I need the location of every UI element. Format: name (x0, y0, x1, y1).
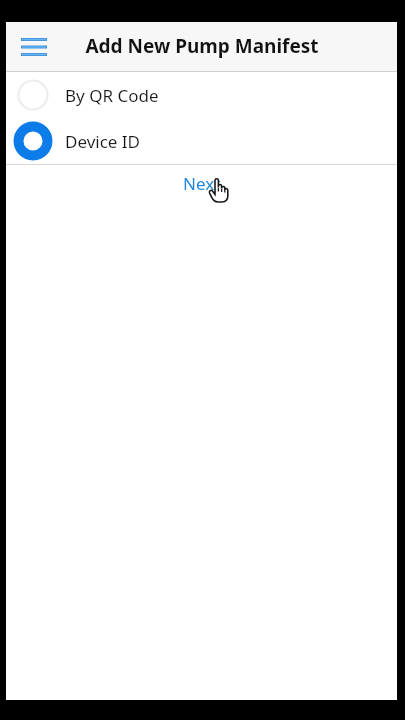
staticText: Next (183, 172, 221, 195)
button[interactable]: Next (177, 171, 227, 196)
staticText: Device ID (65, 130, 141, 153)
button[interactable]: Device ID (6, 118, 397, 164)
staticText: Add New Pump Manifest (85, 33, 319, 59)
button[interactable]: Open navigation menu (10, 23, 58, 71)
staticText: By QR Code (65, 84, 159, 107)
button[interactable]: By QR Code (6, 72, 397, 118)
